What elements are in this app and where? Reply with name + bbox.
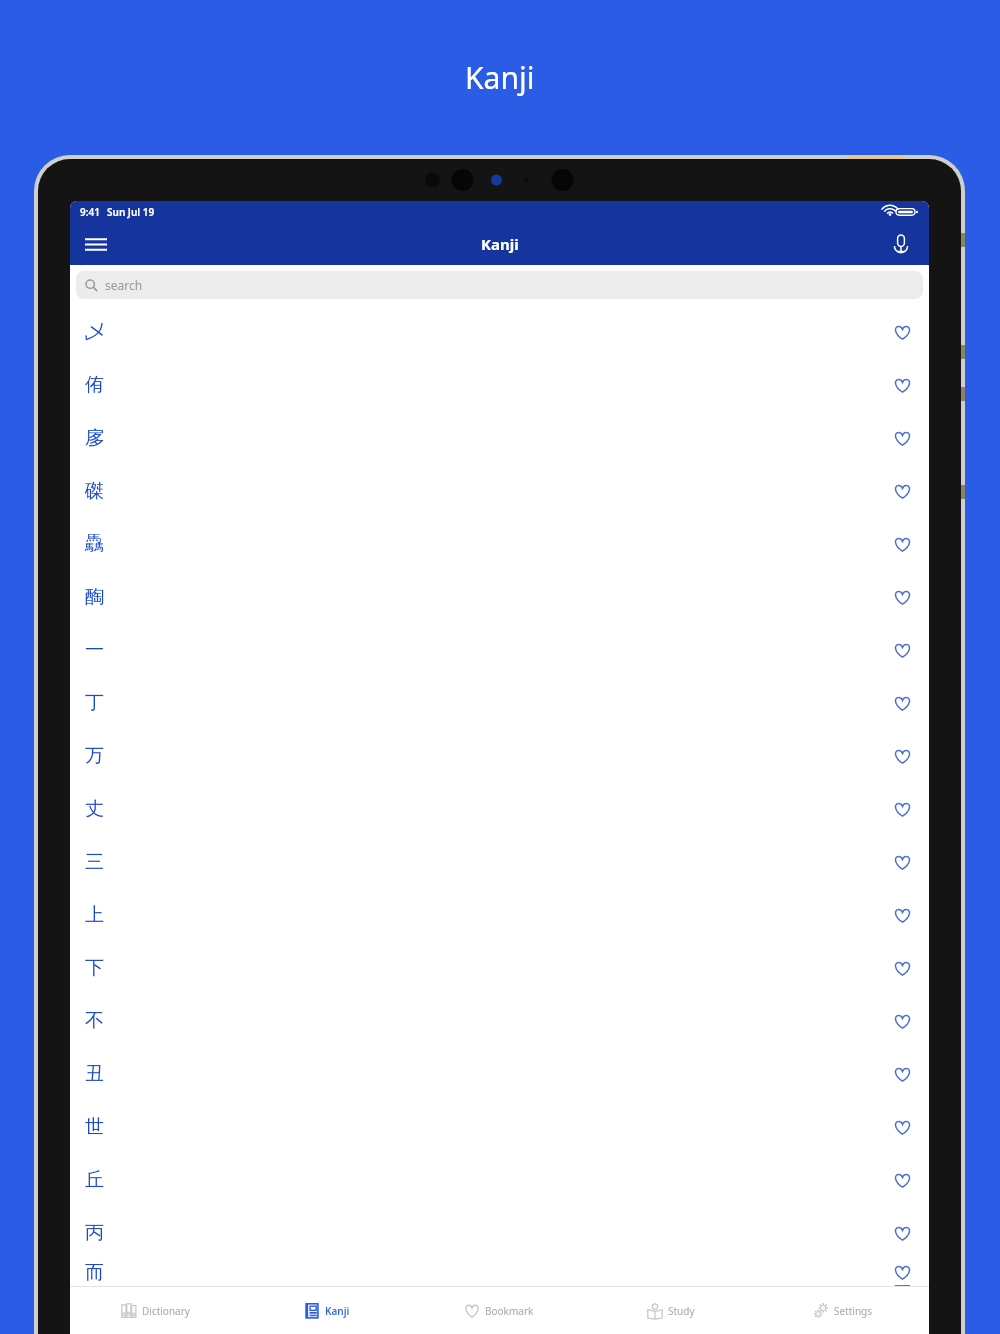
staticText: 驫 <box>85 532 104 556</box>
button[interactable]: 醄 <box>70 570 929 623</box>
staticText: 丈 <box>85 797 104 821</box>
button[interactable]: 驫 <box>70 517 929 570</box>
button[interactable]: Open navigation menu <box>76 224 116 264</box>
button[interactable]: Bookmark 万 <box>882 736 922 776</box>
button[interactable]: 丙 <box>70 1206 929 1259</box>
button[interactable]: 世 <box>70 1100 929 1153</box>
button[interactable]: Bookmark 上 <box>882 895 922 935</box>
staticText: 而 <box>85 1261 104 1285</box>
button[interactable]: Bookmark 丙 <box>882 1213 922 1253</box>
staticText: 世 <box>85 1115 104 1139</box>
button[interactable]: Bookmark 丈 <box>882 789 922 829</box>
staticText: 乄 <box>85 320 104 344</box>
staticText: Kanji <box>325 1304 350 1318</box>
staticText: 丑 <box>85 1062 104 1086</box>
button[interactable]: 三 <box>70 835 929 888</box>
button[interactable]: Bookmark 世 <box>882 1107 922 1147</box>
staticText: 下 <box>85 956 104 980</box>
button[interactable]: Study <box>585 1287 757 1334</box>
staticText: 一 <box>85 638 104 662</box>
staticText: 丁 <box>85 691 104 715</box>
button[interactable]: Bookmark 而 <box>882 1259 922 1286</box>
button[interactable]: search <box>76 271 923 299</box>
button[interactable]: Bookmark 一 <box>882 630 922 670</box>
staticText: Kanji <box>481 234 519 254</box>
button[interactable]: 丁 <box>70 676 929 729</box>
button[interactable]: 一 <box>70 623 929 676</box>
button[interactable]: Kanji <box>241 1287 413 1334</box>
staticText: Study <box>668 1304 695 1318</box>
staticText: 磔 <box>85 479 104 503</box>
button[interactable]: 下 <box>70 941 929 994</box>
button[interactable]: 丑 <box>70 1047 929 1100</box>
button[interactable]: Bookmark 侑 <box>882 365 922 405</box>
button[interactable]: 而 <box>70 1259 929 1286</box>
button[interactable]: Settings <box>757 1287 929 1334</box>
staticText: Dictionary <box>142 1304 190 1318</box>
button[interactable]: 乄 <box>70 305 929 358</box>
button[interactable]: Voice search <box>881 224 921 264</box>
button[interactable]: Bookmark 三 <box>882 842 922 882</box>
button[interactable]: 丘 <box>70 1153 929 1206</box>
staticText: 扅 <box>85 426 104 450</box>
button[interactable]: Bookmark 不 <box>882 1001 922 1041</box>
button[interactable]: Bookmark 丁 <box>882 683 922 723</box>
staticText: 醄 <box>85 585 104 609</box>
button[interactable]: Bookmark 驫 <box>882 524 922 564</box>
button[interactable]: Dictionary <box>70 1287 241 1334</box>
button[interactable]: 磔 <box>70 464 929 517</box>
button[interactable]: Bookmark 扅 <box>882 418 922 458</box>
button[interactable]: 扅 <box>70 411 929 464</box>
button[interactable]: 万 <box>70 729 929 782</box>
button[interactable]: Bookmark 丑 <box>882 1054 922 1094</box>
staticText: 三 <box>85 850 104 874</box>
button[interactable]: Bookmark 乄 <box>882 312 922 352</box>
staticText: 不 <box>85 1009 104 1033</box>
button[interactable]: Bookmark 醄 <box>882 577 922 617</box>
button[interactable]: Bookmark 下 <box>882 948 922 988</box>
button[interactable]: Bookmark 磔 <box>882 471 922 511</box>
staticText: Settings <box>834 1304 873 1318</box>
button[interactable]: 丈 <box>70 782 929 835</box>
button[interactable]: 不 <box>70 994 929 1047</box>
button[interactable]: 侑 <box>70 358 929 411</box>
staticText: 丙 <box>85 1221 104 1245</box>
button[interactable]: Bookmark 丘 <box>882 1160 922 1200</box>
staticText: 9:41 <box>80 205 100 219</box>
button[interactable]: 上 <box>70 888 929 941</box>
staticText: 万 <box>85 744 104 768</box>
staticText: 丘 <box>85 1168 104 1192</box>
staticText: search <box>105 277 143 293</box>
staticText: 上 <box>85 903 104 927</box>
staticText: Sun Jul 19 <box>107 205 155 219</box>
button[interactable]: Bookmark <box>413 1287 585 1334</box>
staticText: 侑 <box>85 373 104 397</box>
staticText: Bookmark <box>485 1304 534 1318</box>
staticText: Kanji <box>465 57 535 98</box>
